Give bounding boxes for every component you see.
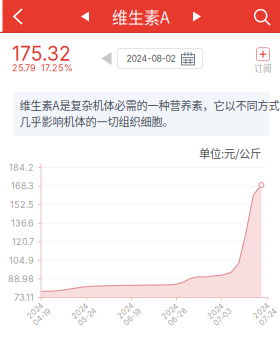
staticText: 几乎影响机体的一切组织细胞。 [19,113,173,129]
staticText: 73.11 [14,292,34,303]
staticText: 88.98 [8,273,34,284]
button[interactable]: Search [244,0,279,33]
button[interactable]: 2024-08-02 [117,48,202,68]
staticText: 17.25% [41,62,73,73]
button[interactable]: 订阅 [254,48,272,74]
button[interactable]: Next product [182,0,212,33]
button[interactable]: Back [0,0,34,33]
staticText: 2024 06-19 [119,304,140,323]
staticText: 2024 04-19 [28,304,49,323]
staticText: 维生素A是复杂机体必需的一种营养素，它以不同方式 [19,97,279,113]
staticText: 维生素A [112,5,170,28]
staticText: 单位:元/公斤 [199,145,261,161]
staticText: 25.79 [12,62,36,73]
staticText: 2024 07-24 [254,304,275,323]
staticText: 2024 06-26 [163,304,186,323]
button[interactable]: Previous date [101,52,111,65]
button[interactable]: Previous product [70,0,100,33]
staticText: 175.32 [12,42,71,65]
staticText: 152.5 [10,199,34,210]
staticText: 订阅 [254,62,272,74]
staticText: 136.6 [11,218,34,229]
staticText: 168.3 [11,181,34,192]
staticText: 104.9 [9,255,34,266]
staticText: 2024-08-02 [126,53,175,64]
staticText: 120.7 [12,236,34,247]
staticText: 184.2 [9,162,34,173]
staticText: 2024 05-24 [73,304,95,323]
staticText: 2024 07-03 [209,304,231,323]
